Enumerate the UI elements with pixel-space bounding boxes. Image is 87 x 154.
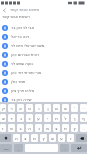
staticText: ע [37, 116, 40, 120]
staticText: ד [10, 116, 13, 120]
button[interactable]: ס [8, 124, 15, 132]
staticText: אבי לוי כהן בר [11, 25, 35, 30]
button[interactable]: ה [26, 124, 33, 132]
button[interactable]: נ [35, 124, 42, 132]
button[interactable]: ן [44, 104, 51, 112]
staticText: ב [19, 126, 22, 130]
button[interactable]: אורי מזרחי דוד כהן [0, 68, 87, 77]
staticText: ע [60, 136, 63, 140]
staticText: אליהו פרץ ציון [11, 88, 35, 93]
button[interactable]: דנה בר־אל [0, 32, 87, 41]
button[interactable]: ז [67, 134, 74, 142]
staticText: ם [55, 106, 58, 110]
staticText: ס [10, 126, 13, 130]
button[interactable]: ש [0, 114, 6, 122]
staticText: ת [64, 126, 67, 130]
button[interactable]: ע [35, 114, 42, 122]
button[interactable]: צ [22, 134, 29, 142]
button[interactable]: ץ [40, 134, 47, 142]
button[interactable]: תמר גולן [0, 77, 87, 86]
button[interactable]: ך [71, 114, 78, 122]
button[interactable]: ו [35, 104, 42, 112]
staticText: רשימת אנשי קשר [2, 14, 30, 19]
button[interactable]: רונית אברהם כהן [0, 50, 87, 59]
button[interactable]: י [44, 114, 51, 122]
button[interactable]: ח [13, 134, 20, 142]
button[interactable]: נועה שמש לוי [0, 59, 87, 68]
staticText: א [19, 106, 22, 110]
staticText: ח [15, 136, 18, 140]
button[interactable]: Back [1, 7, 8, 14]
button[interactable]: Backspace [76, 134, 87, 142]
staticText: ף [82, 116, 85, 120]
staticText: שירה רוזן בר [11, 97, 32, 102]
staticText: צ [55, 126, 58, 130]
staticText: נועה שמש לוי [11, 61, 33, 66]
staticText: תמר גולן [11, 79, 26, 84]
button[interactable]: ש [49, 134, 56, 142]
button[interactable]: צ [53, 124, 60, 132]
staticText: רונית אברהם כהן [11, 52, 40, 57]
button[interactable]: Shift [0, 134, 11, 142]
button[interactable]: Enter [71, 144, 87, 152]
staticText: . [64, 146, 66, 151]
button[interactable]: ע [58, 134, 65, 142]
button[interactable]: שירה רוזן בר [0, 95, 87, 104]
button[interactable]: אבי לוי כהן בר [0, 23, 87, 32]
button[interactable]: ' [71, 104, 78, 112]
staticText: פ [64, 106, 67, 110]
button[interactable]: ף [80, 114, 87, 122]
button[interactable]: פ [62, 104, 69, 112]
button[interactable]: , [14, 144, 23, 152]
staticText: ש [2, 116, 5, 120]
button[interactable]: ח [53, 114, 60, 122]
staticText: ך [73, 116, 76, 120]
button[interactable]: ת [31, 134, 38, 142]
staticText: ה [28, 126, 31, 130]
button[interactable]: ר [8, 104, 15, 112]
button[interactable]: מ [44, 124, 51, 132]
button[interactable]: ד [8, 114, 15, 122]
staticText: ?123 [3, 147, 9, 150]
button[interactable]: ׳ [80, 104, 87, 112]
staticText: ץ [42, 136, 45, 140]
staticText: ׳ [83, 106, 85, 110]
button[interactable]: א [17, 104, 24, 112]
staticText: ץ [73, 126, 76, 130]
button[interactable]: ?123 [0, 144, 12, 152]
staticText: , [18, 146, 20, 151]
button[interactable]: ז [0, 124, 6, 132]
button[interactable]: אליהו פרץ ציון [0, 86, 87, 95]
staticText: ן [47, 106, 49, 110]
staticText: כ [28, 116, 31, 120]
button[interactable]: ג [17, 114, 24, 122]
staticText: צ [24, 136, 27, 140]
staticText: אורי מזרחי דוד כהן [11, 70, 42, 75]
button[interactable]: ם [53, 104, 60, 112]
button[interactable]: ב [17, 124, 24, 132]
button[interactable]: משה ישראלי חיים לוי [0, 41, 87, 50]
staticText: משה ישראלי חיים לוי [11, 43, 45, 48]
staticText: ' [74, 106, 75, 111]
staticText: ת [33, 136, 36, 140]
staticText: ר [10, 106, 13, 110]
button[interactable]: כ [26, 114, 33, 122]
staticText: ט [28, 106, 31, 110]
staticText: ז [2, 126, 4, 130]
staticText: ק [2, 106, 5, 110]
staticText: ח [55, 116, 58, 120]
staticText: . [83, 126, 85, 131]
button[interactable]: ץ [71, 124, 78, 132]
button[interactable]: ק [0, 104, 6, 112]
staticText: ג [20, 116, 22, 120]
staticText: ז [70, 136, 72, 140]
staticText: חיפוש אנשי קשר [10, 7, 40, 13]
staticText: י [47, 116, 48, 120]
button[interactable]: ת [62, 124, 69, 132]
button[interactable]: . [80, 124, 87, 132]
staticText: מ [46, 126, 49, 130]
button[interactable]: ט [26, 104, 33, 112]
button[interactable]: ל [62, 114, 69, 122]
